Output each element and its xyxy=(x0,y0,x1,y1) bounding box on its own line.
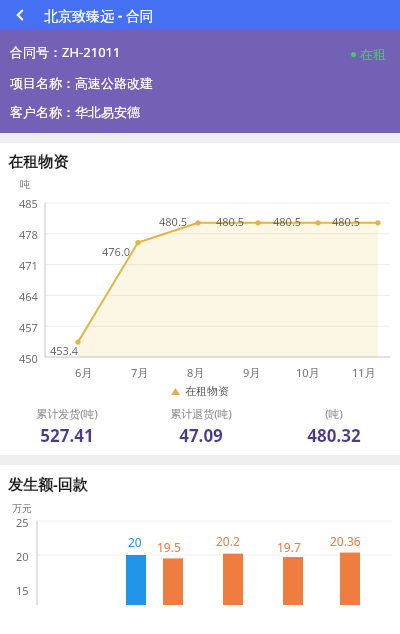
staticText: 15 xyxy=(16,583,29,598)
staticText: (吨) xyxy=(325,406,343,421)
staticText: 450 xyxy=(19,351,38,365)
staticText: 480.5 xyxy=(216,214,245,229)
button[interactable]: Back xyxy=(0,0,40,30)
staticText: 在租 xyxy=(360,46,386,62)
staticText: 464 xyxy=(19,289,38,304)
staticText: 478 xyxy=(19,227,38,242)
staticText: 20 xyxy=(16,549,29,564)
staticText: 25 xyxy=(16,515,29,530)
button[interactable]: 累计发货(吨) xyxy=(0,406,134,447)
staticText: 19.5 xyxy=(157,539,181,555)
staticText: 6月 xyxy=(75,365,93,380)
staticText: 8月 xyxy=(187,365,205,380)
staticText: 在租物资 xyxy=(185,384,229,398)
staticText: 11月 xyxy=(352,365,376,380)
staticText: 20.2 xyxy=(216,533,240,549)
staticText: 480.32 xyxy=(307,424,361,447)
staticText: 457 xyxy=(19,320,38,335)
staticText: 客户名称：华北易安德 xyxy=(10,104,140,120)
staticText: 累计退货(吨) xyxy=(170,406,232,421)
staticText: 万元 xyxy=(12,502,32,515)
staticText: 47.09 xyxy=(179,424,223,447)
staticText: 527.41 xyxy=(40,424,94,447)
staticText: 471 xyxy=(19,258,38,273)
staticText: 19.7 xyxy=(277,539,301,555)
staticText: 7月 xyxy=(131,365,149,380)
staticText: 476.0 xyxy=(102,244,131,259)
staticText: 480.5 xyxy=(273,214,302,229)
staticText: 10月 xyxy=(296,365,320,380)
staticText: 在租物资 xyxy=(8,153,68,172)
staticText: 北京致臻远 - 合同 xyxy=(44,6,154,25)
staticText: 累计发货(吨) xyxy=(36,406,98,421)
staticText: 480.5 xyxy=(159,214,188,229)
staticText: 453.4 xyxy=(50,343,79,358)
staticText: 9月 xyxy=(243,365,261,380)
staticText: 20 xyxy=(128,534,142,550)
staticText: 20.36 xyxy=(330,533,361,549)
staticText: 吨 xyxy=(20,178,30,191)
button[interactable]: (吨) xyxy=(267,406,400,447)
staticText: 485 xyxy=(19,196,38,211)
button[interactable]: 累计退货(吨) xyxy=(134,406,267,447)
staticText: 合同号：ZH-21011 xyxy=(10,43,121,61)
staticText: 发生额-回款 xyxy=(8,474,88,494)
button[interactable]: 在租 xyxy=(351,46,386,62)
staticText: 480.5 xyxy=(332,214,361,229)
staticText: 项目名称：高速公路改建 xyxy=(10,75,153,91)
